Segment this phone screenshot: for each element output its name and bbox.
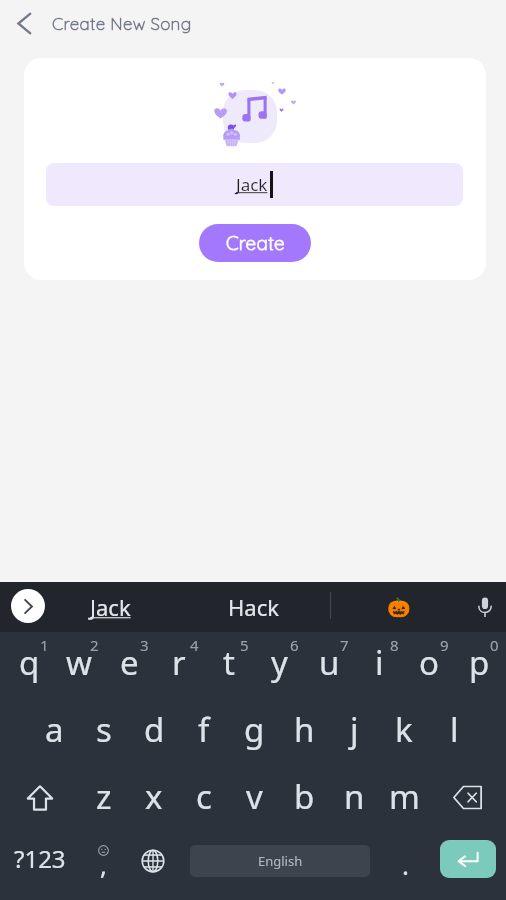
button[interactable]: x (129, 766, 179, 833)
staticText: y (271, 640, 288, 685)
staticText: Jack (90, 592, 131, 622)
staticText: a (45, 707, 64, 752)
button[interactable]: n (329, 766, 379, 833)
button[interactable]: Emoji (374, 582, 424, 632)
button[interactable]: Change keyboard language (128, 833, 178, 900)
staticText: w (66, 640, 92, 685)
button[interactable]: e (104, 632, 154, 699)
staticText: 5 (240, 635, 249, 655)
button[interactable]: Backspace (429, 766, 505, 833)
staticText: q (19, 640, 40, 685)
staticText: l (450, 707, 459, 752)
button[interactable]: d (129, 699, 179, 766)
button[interactable]: Jack (46, 163, 463, 206)
staticText: k (395, 707, 413, 752)
button[interactable]: q (4, 632, 54, 699)
staticText: o (419, 640, 439, 685)
staticText: d (144, 707, 165, 752)
staticText: 🎃 (387, 596, 411, 618)
button[interactable]: English (190, 845, 370, 877)
staticText: s (96, 707, 112, 752)
staticText: 8 (390, 635, 399, 655)
staticText: x (145, 774, 163, 819)
button[interactable]: b (279, 766, 329, 833)
staticText: v (246, 774, 263, 819)
staticText: 6 (290, 635, 299, 655)
button[interactable]: k (379, 699, 429, 766)
button[interactable]: Enter (440, 840, 496, 878)
staticText: z (96, 774, 112, 819)
button[interactable]: s (79, 699, 129, 766)
staticText: , (100, 847, 107, 882)
staticText: t (223, 640, 235, 685)
staticText: i (375, 640, 384, 685)
button[interactable]: a (29, 699, 79, 766)
button[interactable]: w (54, 632, 104, 699)
staticText: h (294, 707, 315, 752)
staticText: 4 (190, 635, 199, 655)
staticText: 9 (440, 635, 449, 655)
staticText: j (350, 707, 359, 752)
staticText: p (469, 640, 490, 685)
staticText: 3 (140, 635, 149, 655)
staticText: Jack (236, 173, 268, 196)
button[interactable]: l (429, 699, 479, 766)
button[interactable]: g (229, 699, 279, 766)
button[interactable]: Create (199, 224, 311, 262)
staticText: e (120, 640, 139, 685)
staticText: u (319, 640, 340, 685)
staticText: 7 (340, 635, 349, 655)
button[interactable]: z (79, 766, 129, 833)
button[interactable]: ?123 (0, 833, 80, 900)
button[interactable]: p (454, 632, 504, 699)
button[interactable]: . (382, 833, 428, 900)
staticText: . (402, 847, 409, 882)
button[interactable]: Voice input (462, 582, 506, 632)
button[interactable]: Hack (203, 582, 303, 632)
button[interactable]: y (254, 632, 304, 699)
button[interactable]: m (379, 766, 429, 833)
staticText: Hack (228, 592, 279, 622)
staticText: b (294, 774, 315, 819)
staticText: 0 (490, 635, 499, 655)
staticText: g (244, 707, 265, 752)
staticText: English (258, 852, 303, 870)
staticText: 2 (90, 635, 99, 655)
staticText: ?123 (14, 842, 66, 875)
button[interactable]: h (279, 699, 329, 766)
button[interactable]: j (329, 699, 379, 766)
staticText: m (389, 774, 420, 819)
staticText: Create New Song (52, 13, 192, 34)
staticText: Create (226, 231, 285, 255)
staticText: n (344, 774, 365, 819)
staticText: f (198, 707, 210, 752)
staticText: r (172, 640, 186, 685)
button[interactable]: f (179, 699, 229, 766)
staticText: 1 (40, 635, 49, 655)
staticText: c (196, 774, 212, 819)
button[interactable]: r (154, 632, 204, 699)
button[interactable]: o (404, 632, 454, 699)
button[interactable]: Jack (60, 582, 160, 632)
button[interactable]: v (229, 766, 279, 833)
button[interactable]: Back (0, 0, 48, 46)
button[interactable]: , (78, 833, 128, 900)
button[interactable]: t (204, 632, 254, 699)
button[interactable]: c (179, 766, 229, 833)
button[interactable]: u (304, 632, 354, 699)
button[interactable]: Show more suggestions (11, 589, 45, 623)
button[interactable]: Shift (0, 766, 79, 833)
button[interactable]: i (354, 632, 404, 699)
